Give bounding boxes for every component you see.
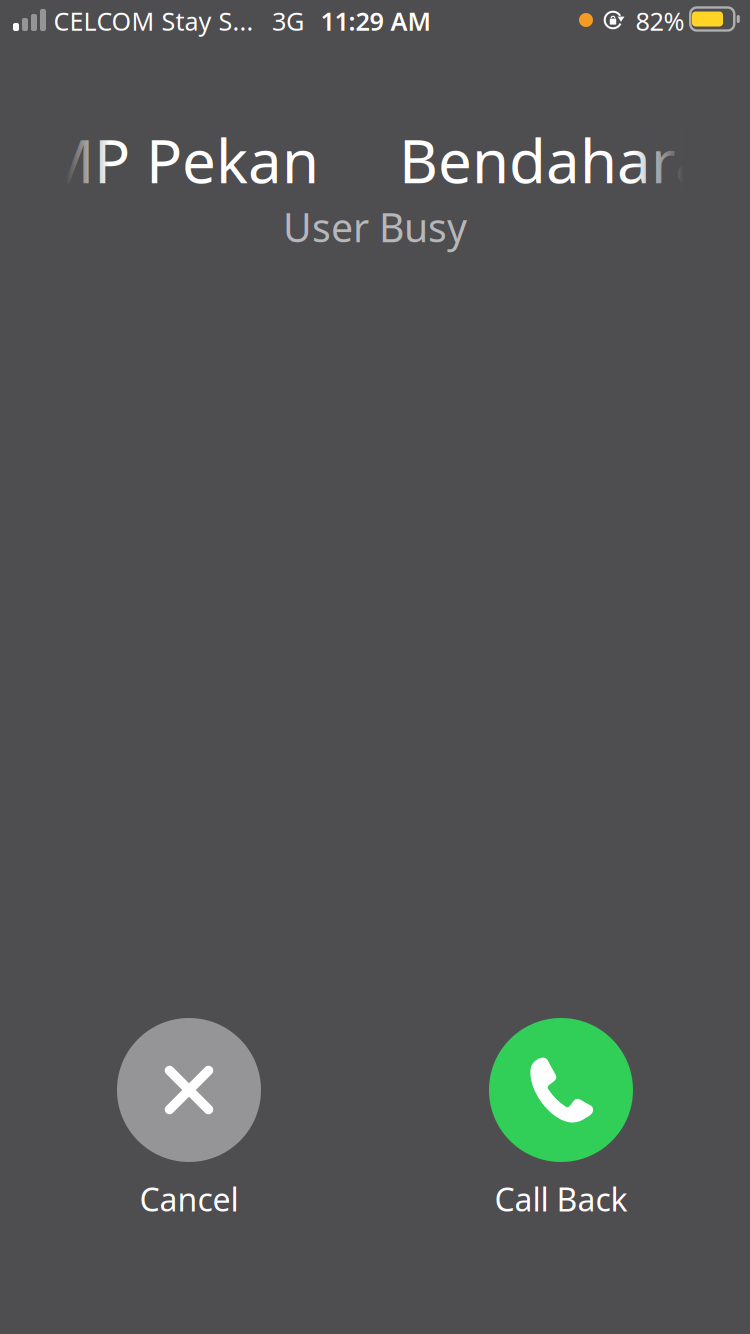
staticText: Cancel <box>139 1178 238 1220</box>
staticText: 3G <box>272 4 304 38</box>
staticText: Call Back <box>494 1178 627 1220</box>
staticText: SMP Pekan Bendahara <box>7 120 709 200</box>
staticText: 11:29 AM <box>320 4 431 38</box>
button[interactable]: Call Back <box>451 1019 671 1215</box>
staticText: CELCOM Stay S... <box>53 4 253 38</box>
staticText: 82% <box>635 4 684 38</box>
button[interactable]: Cancel <box>79 1019 299 1215</box>
staticText: User Busy <box>283 201 467 253</box>
